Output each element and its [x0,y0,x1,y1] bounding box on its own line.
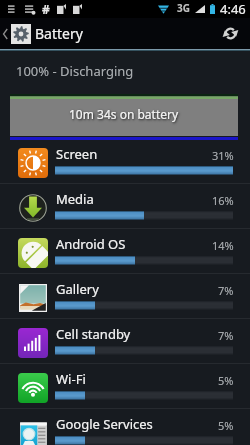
staticText: Media [56,190,94,208]
button[interactable]: Media [0,184,250,229]
staticText: Wi-Fi [56,370,86,388]
staticText: Screen [56,145,98,163]
staticText: 7% [218,283,234,298]
staticText: 100% - Discharging [16,62,134,80]
staticText: 4:46 [220,0,246,18]
staticText: 3G [177,1,190,15]
staticText: 10m 34s on battery [69,106,179,122]
staticText: Battery [35,24,83,43]
button[interactable]: Gallery [0,274,250,319]
staticText: Google Services [56,415,153,433]
staticText: Gallery [56,280,99,298]
button[interactable]: Refresh [212,18,250,49]
staticText: 16% [212,193,234,208]
staticText: # [42,1,50,17]
staticText: Cell standby [56,325,131,343]
staticText: 14% [212,238,234,253]
staticText: 31% [212,148,234,163]
button[interactable]: Cell standby [0,319,250,364]
button[interactable]: Wi-Fi [0,364,250,409]
staticText: Android OS [56,235,126,253]
staticText: 5% [218,418,234,433]
staticText: 7% [218,328,234,343]
staticText: 5% [218,373,234,388]
button[interactable]: Google Services [0,409,250,445]
button[interactable]: Android OS [0,229,250,274]
button[interactable]: Screen [0,139,250,184]
button[interactable]: Battery [0,18,93,49]
